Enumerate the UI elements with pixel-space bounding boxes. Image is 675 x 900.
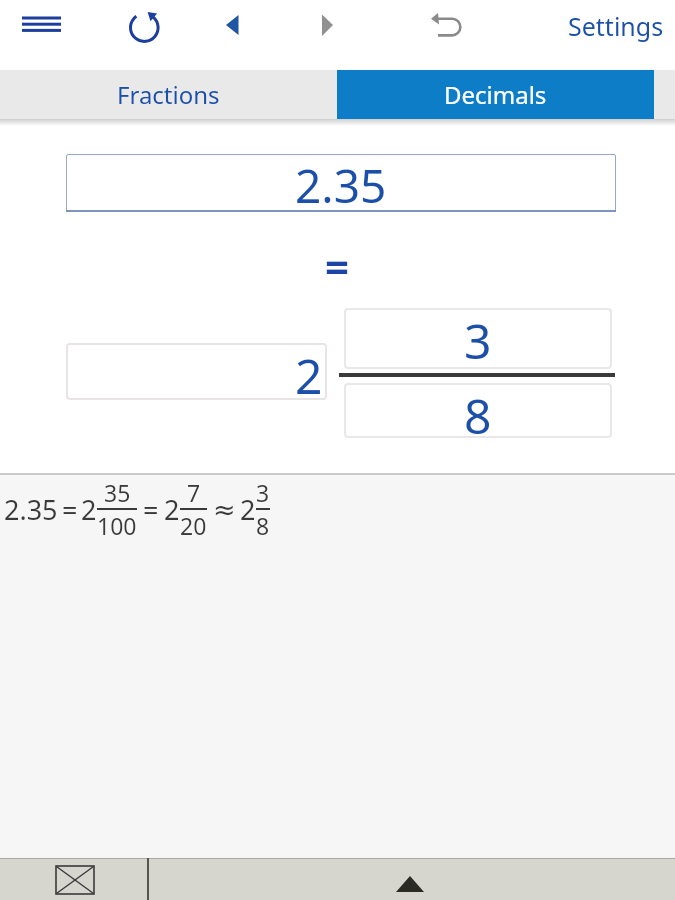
staticText: 2.35 bbox=[295, 154, 387, 212]
button[interactable] bbox=[312, 9, 342, 41]
staticText: 2 bbox=[164, 491, 180, 528]
button[interactable] bbox=[426, 6, 466, 42]
staticText: 100 bbox=[97, 510, 137, 541]
staticText: 8 bbox=[464, 383, 492, 438]
button[interactable] bbox=[390, 870, 430, 896]
button[interactable]: Fractions bbox=[0, 70, 337, 119]
button[interactable]: Decimals bbox=[337, 70, 654, 119]
staticText: ≈ bbox=[213, 494, 236, 525]
staticText: 2 bbox=[240, 491, 256, 528]
button[interactable]: 3 bbox=[344, 308, 612, 369]
button[interactable]: 2.35 bbox=[66, 154, 616, 212]
button[interactable] bbox=[127, 11, 161, 45]
staticText: 35 bbox=[104, 477, 131, 508]
button[interactable] bbox=[48, 862, 102, 898]
button[interactable] bbox=[216, 9, 246, 41]
staticText: 2 bbox=[295, 343, 323, 400]
staticText: 8 bbox=[256, 510, 270, 541]
staticText: 3 bbox=[464, 308, 492, 369]
staticText: 3 bbox=[256, 477, 270, 508]
staticText: = bbox=[325, 237, 350, 294]
staticText: 7 bbox=[187, 477, 201, 508]
staticText: Fractions bbox=[117, 78, 220, 111]
button[interactable]: Settings bbox=[560, 6, 672, 46]
staticText: 2.35 bbox=[4, 491, 58, 528]
staticText: Settings bbox=[568, 9, 664, 43]
staticText: = bbox=[62, 491, 78, 528]
staticText: Decimals bbox=[444, 78, 547, 111]
button[interactable] bbox=[18, 8, 66, 40]
button[interactable]: 8 bbox=[344, 383, 612, 438]
staticText: 2 bbox=[81, 491, 97, 528]
staticText: 20 bbox=[180, 510, 207, 541]
staticText: = bbox=[143, 491, 159, 528]
button[interactable]: 2 bbox=[66, 343, 327, 400]
